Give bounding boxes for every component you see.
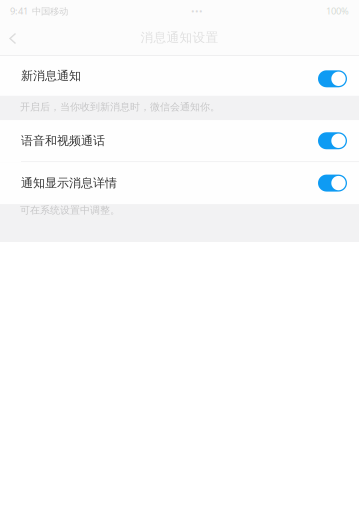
staticText: 消息通知设置: [140, 30, 218, 45]
staticText: 100%: [326, 5, 349, 17]
staticText: 语音和视频通话: [21, 133, 105, 148]
button[interactable]: 通知显示消息详情: [0, 162, 359, 204]
staticText: •••: [191, 5, 203, 17]
staticText: 新消息通知: [21, 68, 81, 83]
staticText: 通知显示消息详情: [21, 176, 117, 190]
button[interactable]: 新消息通知: [0, 56, 359, 96]
button[interactable]: Back: [0, 22, 31, 55]
staticText: 可在系统设置中调整。: [20, 204, 120, 216]
staticText: 开启后，当你收到新消息时，微信会通知你。: [20, 101, 220, 113]
button[interactable]: 语音和视频通话: [0, 120, 359, 162]
staticText: 9:41 中国移动: [10, 5, 68, 17]
